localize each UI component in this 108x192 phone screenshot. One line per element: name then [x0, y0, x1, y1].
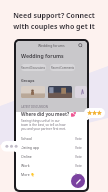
staticText: Need support? Connect with couples who g…	[2, 11, 106, 31]
staticText: Online	[21, 154, 75, 159]
button[interactable]: Online	[16, 152, 87, 161]
staticText: Wedding forums	[21, 52, 64, 59]
staticText: Vote	[75, 146, 82, 150]
button[interactable]: Search	[78, 43, 83, 48]
button[interactable]: Work	[16, 161, 87, 170]
staticText: Where did you meet? 💕	[21, 111, 77, 117]
staticText: Seeing things unfurl in our town is the …	[21, 119, 66, 131]
staticText: Wedding forums	[38, 43, 65, 48]
staticText: Vote	[75, 173, 82, 177]
button[interactable]	[21, 86, 45, 98]
button[interactable]: School	[16, 134, 87, 143]
staticText: LATEST DISCUSSION	[21, 105, 48, 109]
staticText: Work	[21, 163, 75, 168]
button[interactable]	[75, 86, 87, 98]
staticText: Groups	[21, 78, 35, 83]
staticText: More 👇	[21, 172, 75, 177]
staticText: Vote	[75, 164, 82, 168]
staticText: Dating app	[21, 145, 75, 150]
button[interactable]: Dating app	[16, 143, 87, 152]
button[interactable]: Recent Discussions	[21, 64, 46, 71]
button[interactable]: Recent Comments	[50, 64, 75, 71]
staticText: School	[21, 136, 75, 141]
button[interactable]: More 👇	[16, 170, 87, 179]
staticText: Recent Discussions	[21, 66, 46, 70]
button[interactable]: Compose post	[71, 174, 85, 188]
button[interactable]	[48, 86, 72, 98]
staticText: Recent Comments	[51, 66, 75, 70]
staticText: Vote	[75, 155, 82, 159]
staticText: Vote	[75, 137, 82, 141]
